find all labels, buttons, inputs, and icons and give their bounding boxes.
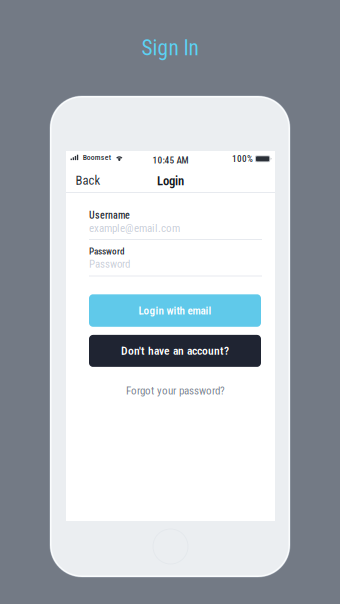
staticText: Back <box>76 173 101 188</box>
staticText: Login <box>157 174 184 188</box>
staticText: 100% <box>232 153 253 164</box>
staticText: Forgot your password? <box>126 384 225 397</box>
staticText: Username <box>89 209 130 221</box>
staticText: example@email.com <box>89 222 180 235</box>
button[interactable]: Back <box>66 168 122 192</box>
staticText: Password <box>89 246 125 257</box>
staticText: Password <box>89 257 130 270</box>
staticText: 10:45 AM <box>152 155 188 166</box>
staticText: Login with email <box>138 304 211 317</box>
staticText: Don't have an account? <box>121 344 229 358</box>
button[interactable]: Login with email <box>89 294 261 327</box>
button[interactable]: Forgot your password? <box>89 385 262 397</box>
staticText: Sign In <box>141 35 198 60</box>
staticText: Boomset <box>83 153 111 162</box>
button[interactable]: Don't have an account? <box>89 335 261 367</box>
